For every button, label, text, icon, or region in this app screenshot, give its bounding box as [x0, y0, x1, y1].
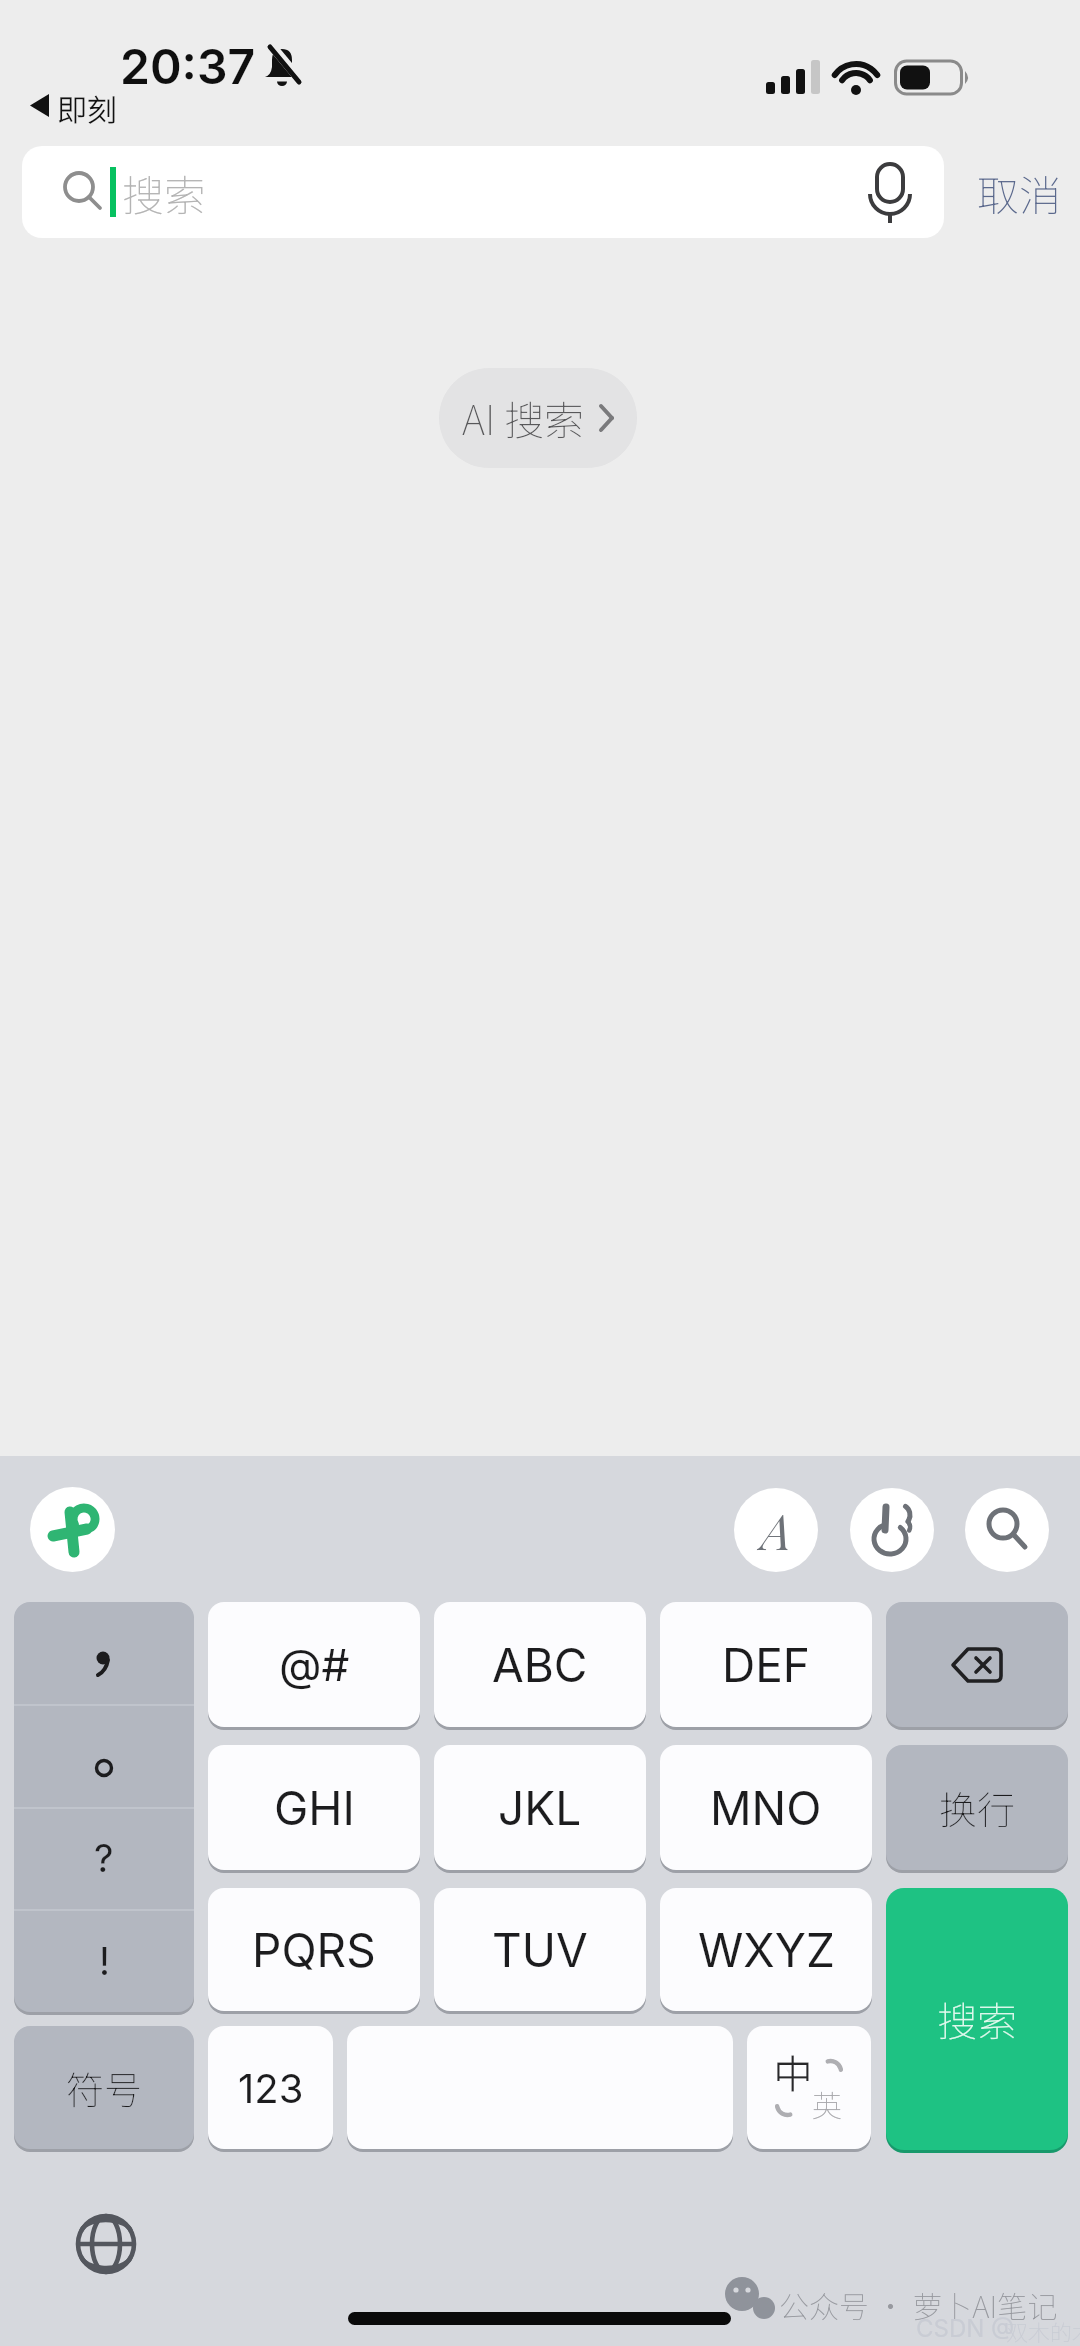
- staticText: @#: [279, 1638, 350, 1691]
- staticText: 中: [774, 2044, 813, 2099]
- button[interactable]: [14, 1602, 194, 2012]
- staticText: 英: [812, 2082, 842, 2125]
- button[interactable]: GHI: [208, 1745, 420, 1870]
- staticText: 123: [238, 2064, 304, 2112]
- button[interactable]: [965, 1488, 1049, 1572]
- staticText: 取消: [977, 162, 1062, 223]
- staticText: 双木的木: [1006, 2315, 1080, 2346]
- staticText: DEF: [722, 1637, 811, 1693]
- staticText: MNO: [710, 1780, 822, 1836]
- staticText: ABC: [492, 1637, 588, 1693]
- button[interactable]: AI 搜索: [439, 368, 637, 468]
- staticText: 20:37: [120, 37, 256, 95]
- staticText: ?: [94, 1835, 114, 1881]
- button[interactable]: 取消: [958, 146, 1080, 238]
- staticText: 搜索: [937, 1990, 1017, 2048]
- button[interactable]: [850, 1488, 934, 1572]
- button[interactable]: 中: [747, 2026, 871, 2149]
- staticText: CSDN @: [916, 2314, 1015, 2343]
- staticText: PQRS: [252, 1922, 376, 1978]
- button[interactable]: JKL: [434, 1745, 646, 1870]
- button[interactable]: PQRS: [208, 1888, 420, 2011]
- button[interactable]: [886, 1602, 1068, 1727]
- button[interactable]: [30, 1487, 115, 1572]
- button[interactable]: 搜索: [22, 146, 944, 238]
- staticText: 即刻: [57, 86, 117, 129]
- button[interactable]: [347, 2026, 733, 2149]
- staticText: TUV: [492, 1922, 588, 1978]
- button[interactable]: 123: [208, 2026, 333, 2149]
- staticText: 公众号 · 萝卜AI笔记: [779, 2283, 1058, 2326]
- button[interactable]: @#: [208, 1602, 420, 1727]
- button[interactable]: 符号: [14, 2026, 194, 2149]
- staticText: 搜索: [122, 162, 207, 223]
- button[interactable]: MNO: [660, 1745, 872, 1870]
- staticText: AI 搜索: [462, 389, 585, 447]
- button[interactable]: ABC: [434, 1602, 646, 1727]
- staticText: 换行: [939, 1780, 1016, 1835]
- staticText: GHI: [274, 1780, 355, 1836]
- button[interactable]: 即刻: [30, 86, 90, 129]
- button[interactable]: DEF: [660, 1602, 872, 1727]
- button[interactable]: A: [734, 1488, 818, 1572]
- button[interactable]: TUV: [434, 1888, 646, 2011]
- button[interactable]: WXYZ: [660, 1888, 872, 2011]
- staticText: WXYZ: [698, 1922, 835, 1978]
- staticText: !: [99, 1938, 110, 1984]
- staticText: JKL: [498, 1780, 582, 1836]
- button[interactable]: 搜索: [886, 1888, 1068, 2150]
- staticText: 符号: [66, 2060, 143, 2115]
- button[interactable]: 换行: [886, 1745, 1068, 1870]
- button[interactable]: [75, 2213, 137, 2275]
- staticText: A: [761, 1498, 792, 1562]
